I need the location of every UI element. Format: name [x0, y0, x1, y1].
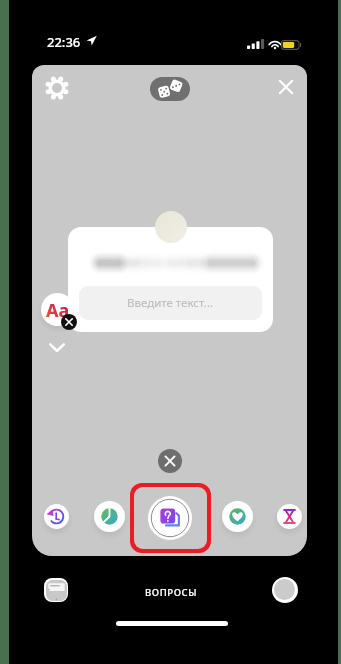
- button[interactable]: Settings: [45, 76, 69, 100]
- button[interactable]: Close: [275, 76, 297, 98]
- button[interactable]: Close stickers: [158, 449, 182, 473]
- button[interactable]: Введите текст...: [79, 286, 262, 320]
- staticText: 22:36: [47, 33, 81, 51]
- button[interactable]: History: [44, 504, 69, 529]
- staticText: Введите текст...: [127, 295, 214, 311]
- button[interactable]: ВОПРОСЫ: [145, 586, 198, 599]
- button[interactable]: Poll: [94, 501, 125, 532]
- button[interactable]: Collapse: [44, 334, 70, 360]
- button[interactable]: Random: [150, 77, 190, 101]
- button[interactable]: Aa: [41, 293, 74, 326]
- button[interactable]: Questions sticker: [148, 496, 192, 540]
- staticText: Aa: [46, 298, 70, 323]
- button[interactable]: Remove text style: [61, 314, 77, 330]
- button[interactable]: Countdown: [277, 504, 302, 529]
- button[interactable]: Like: [222, 501, 253, 532]
- button[interactable]: Gallery: [44, 578, 68, 602]
- button[interactable]: Capture: [272, 577, 298, 603]
